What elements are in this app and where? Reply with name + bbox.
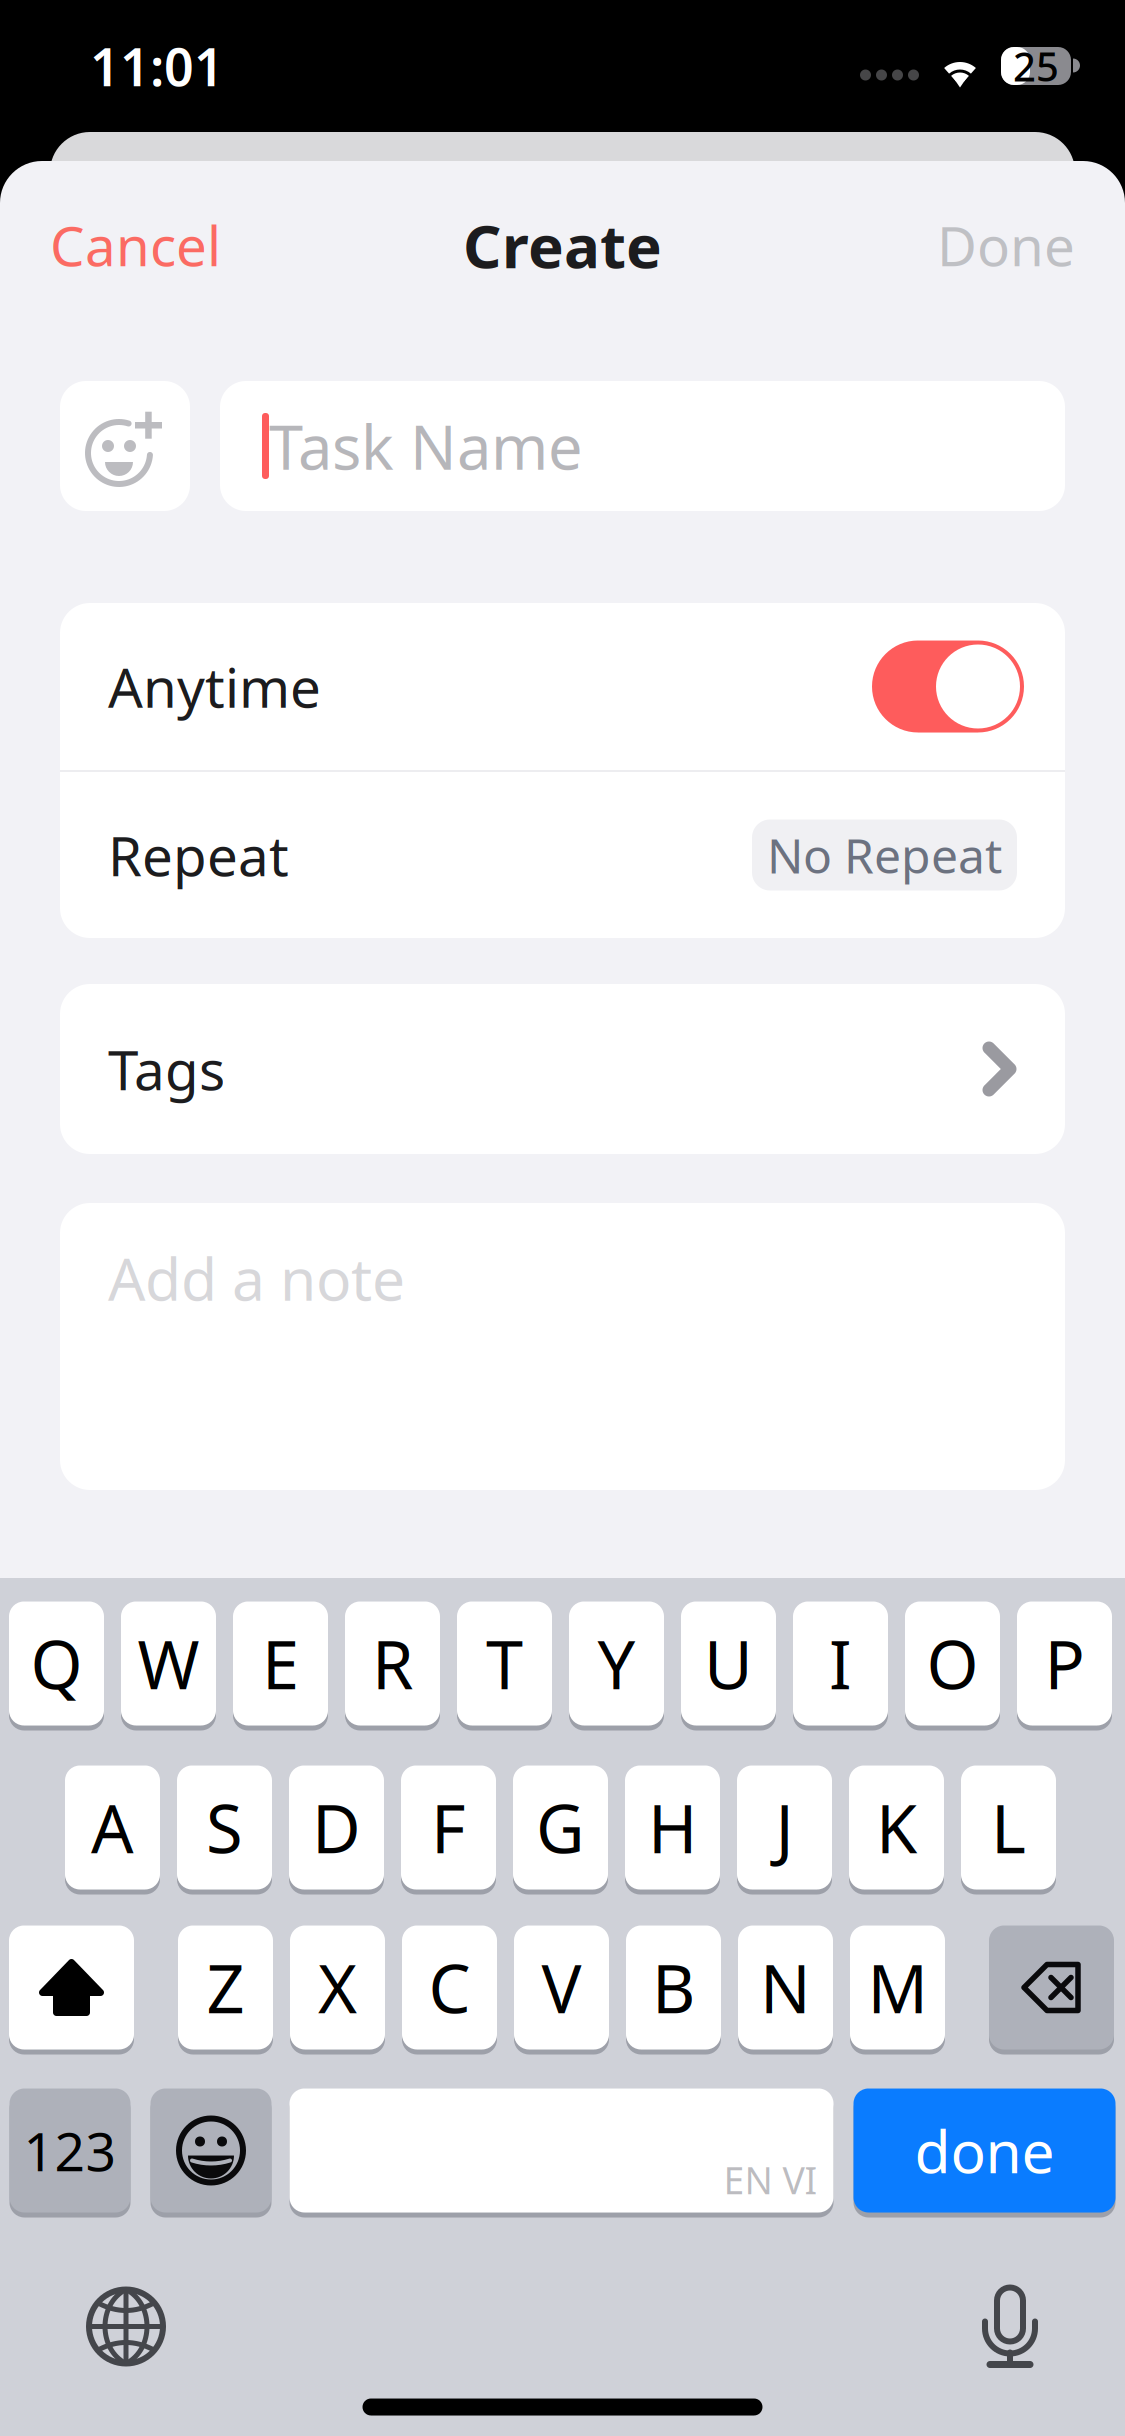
button[interactable]: Anytime xyxy=(60,603,1065,770)
button[interactable]: Cancel xyxy=(30,195,241,295)
button[interactable]: Delete xyxy=(989,1925,1114,2054)
button[interactable]: Emoji xyxy=(150,2088,271,2217)
button[interactable]: H xyxy=(625,1765,720,1894)
staticText: 123 xyxy=(23,2115,116,2186)
button[interactable]: W xyxy=(121,1601,216,1730)
staticText: No Repeat xyxy=(767,823,1002,887)
button[interactable]: J xyxy=(737,1765,832,1894)
staticText: Z xyxy=(206,1943,244,2032)
button[interactable]: X xyxy=(290,1925,385,2054)
button[interactable]: Dictate xyxy=(959,2262,1061,2390)
staticText: M xyxy=(867,1943,927,2032)
staticText: P xyxy=(1044,1619,1084,1708)
button[interactable]: Y xyxy=(569,1601,664,1730)
staticText: Repeat xyxy=(108,819,289,891)
button[interactable]: Tags xyxy=(60,984,1065,1154)
button[interactable]: K xyxy=(849,1765,944,1894)
button[interactable]: O xyxy=(905,1601,1000,1730)
staticText: done xyxy=(914,2111,1054,2189)
staticText: J xyxy=(775,1783,793,1872)
staticText: Anytime xyxy=(108,650,321,723)
staticText: Y xyxy=(597,1619,635,1708)
staticText: Task Name xyxy=(269,405,583,487)
button[interactable]: Add a note xyxy=(60,1203,1065,1490)
staticText: I xyxy=(829,1619,852,1708)
button[interactable]: Repeat xyxy=(60,772,1065,938)
staticText: C xyxy=(428,1943,470,2032)
staticText: Tags xyxy=(108,1033,225,1105)
staticText: K xyxy=(876,1783,917,1872)
staticText: W xyxy=(137,1619,199,1708)
button[interactable]: G xyxy=(513,1765,608,1894)
button[interactable]: D xyxy=(289,1765,384,1894)
staticText: Q xyxy=(30,1619,82,1708)
staticText: H xyxy=(648,1783,697,1872)
staticText: Create xyxy=(463,205,662,285)
staticText: O xyxy=(926,1619,978,1708)
staticText: 11:01 xyxy=(90,31,224,101)
staticText: T xyxy=(486,1619,523,1708)
button[interactable]: S xyxy=(177,1765,272,1894)
button[interactable]: T xyxy=(457,1601,552,1730)
button[interactable]: B xyxy=(626,1925,721,2054)
button[interactable]: L xyxy=(961,1765,1056,1894)
staticText: A xyxy=(91,1783,134,1872)
button[interactable]: F xyxy=(401,1765,496,1894)
button[interactable]: Shift xyxy=(9,1925,134,2054)
staticText: EN VI xyxy=(723,2155,817,2204)
staticText: N xyxy=(760,1943,811,2032)
button[interactable]: Q xyxy=(9,1601,104,1730)
button[interactable]: Switch keyboard xyxy=(64,2264,188,2388)
staticText: U xyxy=(704,1619,753,1708)
staticText: V xyxy=(541,1943,581,2032)
button[interactable]: Space xyxy=(289,2088,833,2217)
button[interactable]: U xyxy=(681,1601,776,1730)
button[interactable]: E xyxy=(233,1601,328,1730)
staticText: D xyxy=(312,1783,361,1872)
staticText: F xyxy=(431,1783,466,1872)
button[interactable]: N xyxy=(738,1925,833,2054)
staticText: Add a note xyxy=(108,1239,405,1317)
button[interactable]: 123 xyxy=(9,2088,130,2217)
staticText: R xyxy=(372,1619,413,1708)
staticText: Cancel xyxy=(50,209,221,281)
staticText: G xyxy=(536,1783,585,1872)
staticText: L xyxy=(991,1783,1026,1872)
staticText: 25 xyxy=(1013,39,1059,92)
button[interactable]: I xyxy=(793,1601,888,1730)
button[interactable]: Pick emoji xyxy=(60,381,190,511)
staticText: S xyxy=(206,1783,243,1872)
button[interactable]: V xyxy=(514,1925,609,2054)
staticText: E xyxy=(262,1619,299,1708)
button[interactable]: P xyxy=(1017,1601,1112,1730)
button[interactable]: A xyxy=(65,1765,160,1894)
button[interactable]: C xyxy=(402,1925,497,2054)
button[interactable]: R xyxy=(345,1601,440,1730)
staticText: X xyxy=(318,1943,357,2032)
button[interactable]: M xyxy=(850,1925,945,2054)
button[interactable]: Done xyxy=(917,195,1095,295)
button[interactable]: Z xyxy=(178,1925,273,2054)
staticText: B xyxy=(652,1943,695,2032)
button[interactable]: done xyxy=(853,2088,1115,2217)
staticText: Done xyxy=(937,209,1075,281)
